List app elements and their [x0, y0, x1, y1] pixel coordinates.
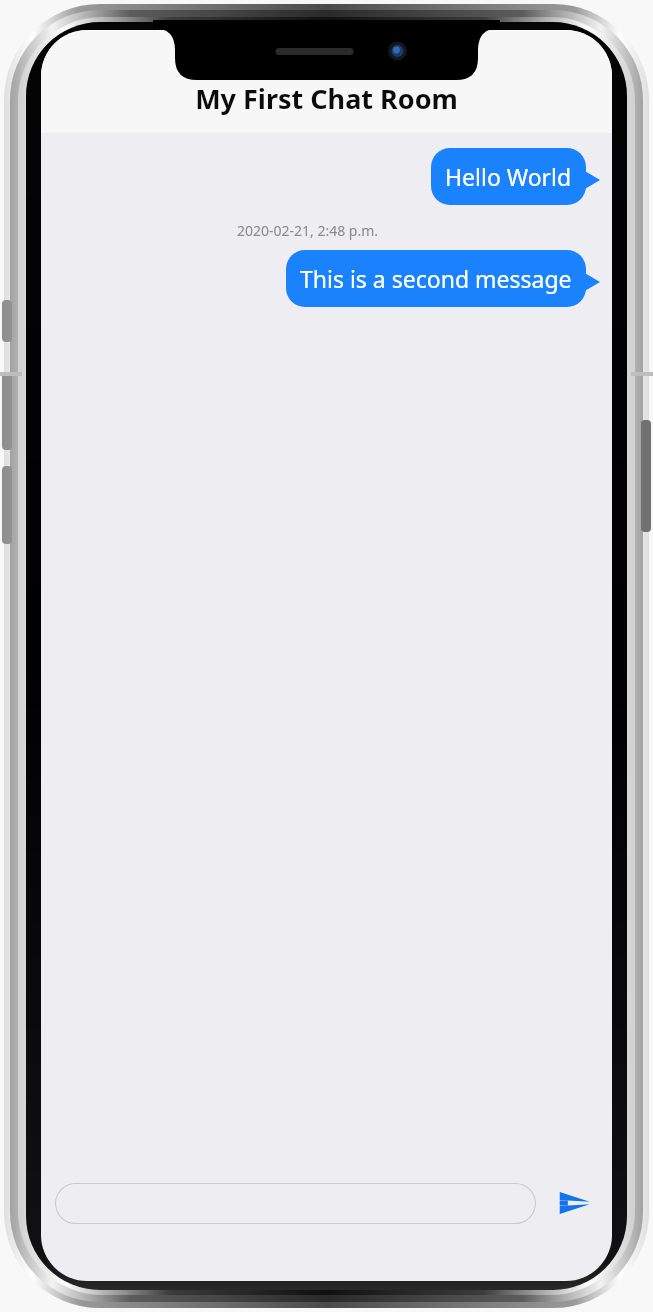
- button[interactable]: Send: [550, 1179, 598, 1227]
- staticText: My First Chat Room: [41, 80, 612, 117]
- staticText: This is a second message: [300, 263, 572, 294]
- staticText: 2020-02-21, 2:48 p.m.: [41, 221, 574, 240]
- staticText: Hello World: [445, 161, 572, 192]
- button[interactable]: [55, 1183, 536, 1224]
- button[interactable]: This is a second message: [286, 250, 600, 307]
- button[interactable]: Hello World: [431, 148, 600, 205]
